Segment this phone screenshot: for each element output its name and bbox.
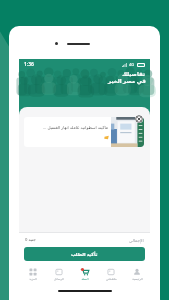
staticText: ... ماكينة اسطوانية عاملة انهار الغسيل: [43, 125, 109, 131]
staticText: تأكيد الطلب: [71, 251, 98, 257]
button[interactable]: ... ماكينة اسطوانية عاملة انهار الغسيل: [24, 117, 144, 147]
button[interactable]: المزيد: [19, 263, 46, 284]
button[interactable]: السلة: [72, 263, 98, 284]
staticText: الإجمالي: [129, 238, 144, 243]
button[interactable]: الرسائل: [46, 263, 72, 284]
staticText: المزيد: [29, 277, 37, 280]
staticText: 0 جنيه: [25, 237, 36, 243]
button[interactable]: الرئيسية: [124, 263, 150, 284]
staticText: تفاصيلك: [122, 71, 146, 77]
staticText: 4G: [129, 62, 135, 67]
staticText: السلة: [81, 277, 89, 280]
staticText: الرئيسية: [132, 277, 143, 280]
button[interactable]: Close: [135, 115, 143, 123]
staticText: محفظتي: [106, 277, 117, 280]
staticText: الرسائل: [54, 277, 64, 280]
staticText: في مصر الخير: [108, 77, 146, 84]
button[interactable]: محفظتي: [98, 263, 124, 284]
button[interactable]: تأكيد الطلب: [24, 247, 145, 261]
staticText: 1:36: [24, 61, 34, 68]
